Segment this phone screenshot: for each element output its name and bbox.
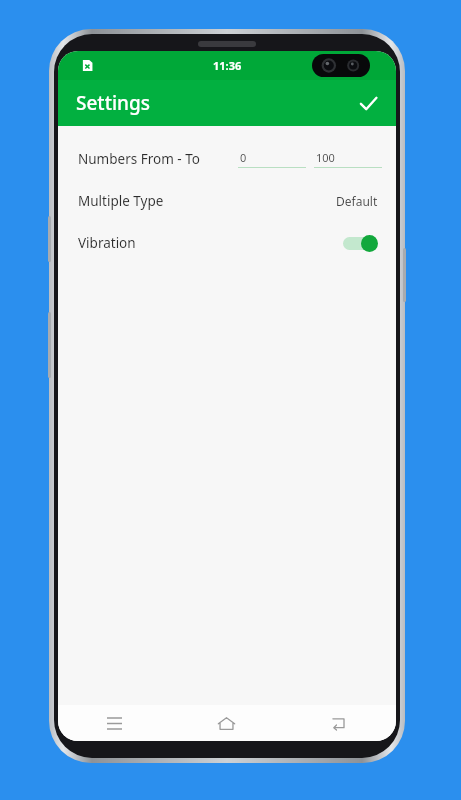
button[interactable]: Vibration [58,222,396,264]
staticText: Settings [76,90,150,116]
staticText: Default [336,193,378,209]
button[interactable]: 0 [238,150,306,168]
button[interactable]: Back [283,705,396,741]
button[interactable]: Recents [58,705,170,741]
staticText: 0 [240,150,247,165]
button[interactable]: 100 [314,150,382,168]
staticText: Numbers From - To [78,150,200,168]
button[interactable]: Vibration toggle [340,232,378,254]
staticText: Vibration [78,234,136,252]
staticText: Multiple Type [78,192,164,210]
button[interactable]: Numbers From - To [58,138,396,180]
button[interactable]: Multiple Type [58,180,396,222]
staticText: 11:36 [213,58,242,73]
staticText: 100 [316,150,335,165]
button[interactable]: Home [170,705,283,741]
button[interactable]: Confirm [348,83,388,123]
